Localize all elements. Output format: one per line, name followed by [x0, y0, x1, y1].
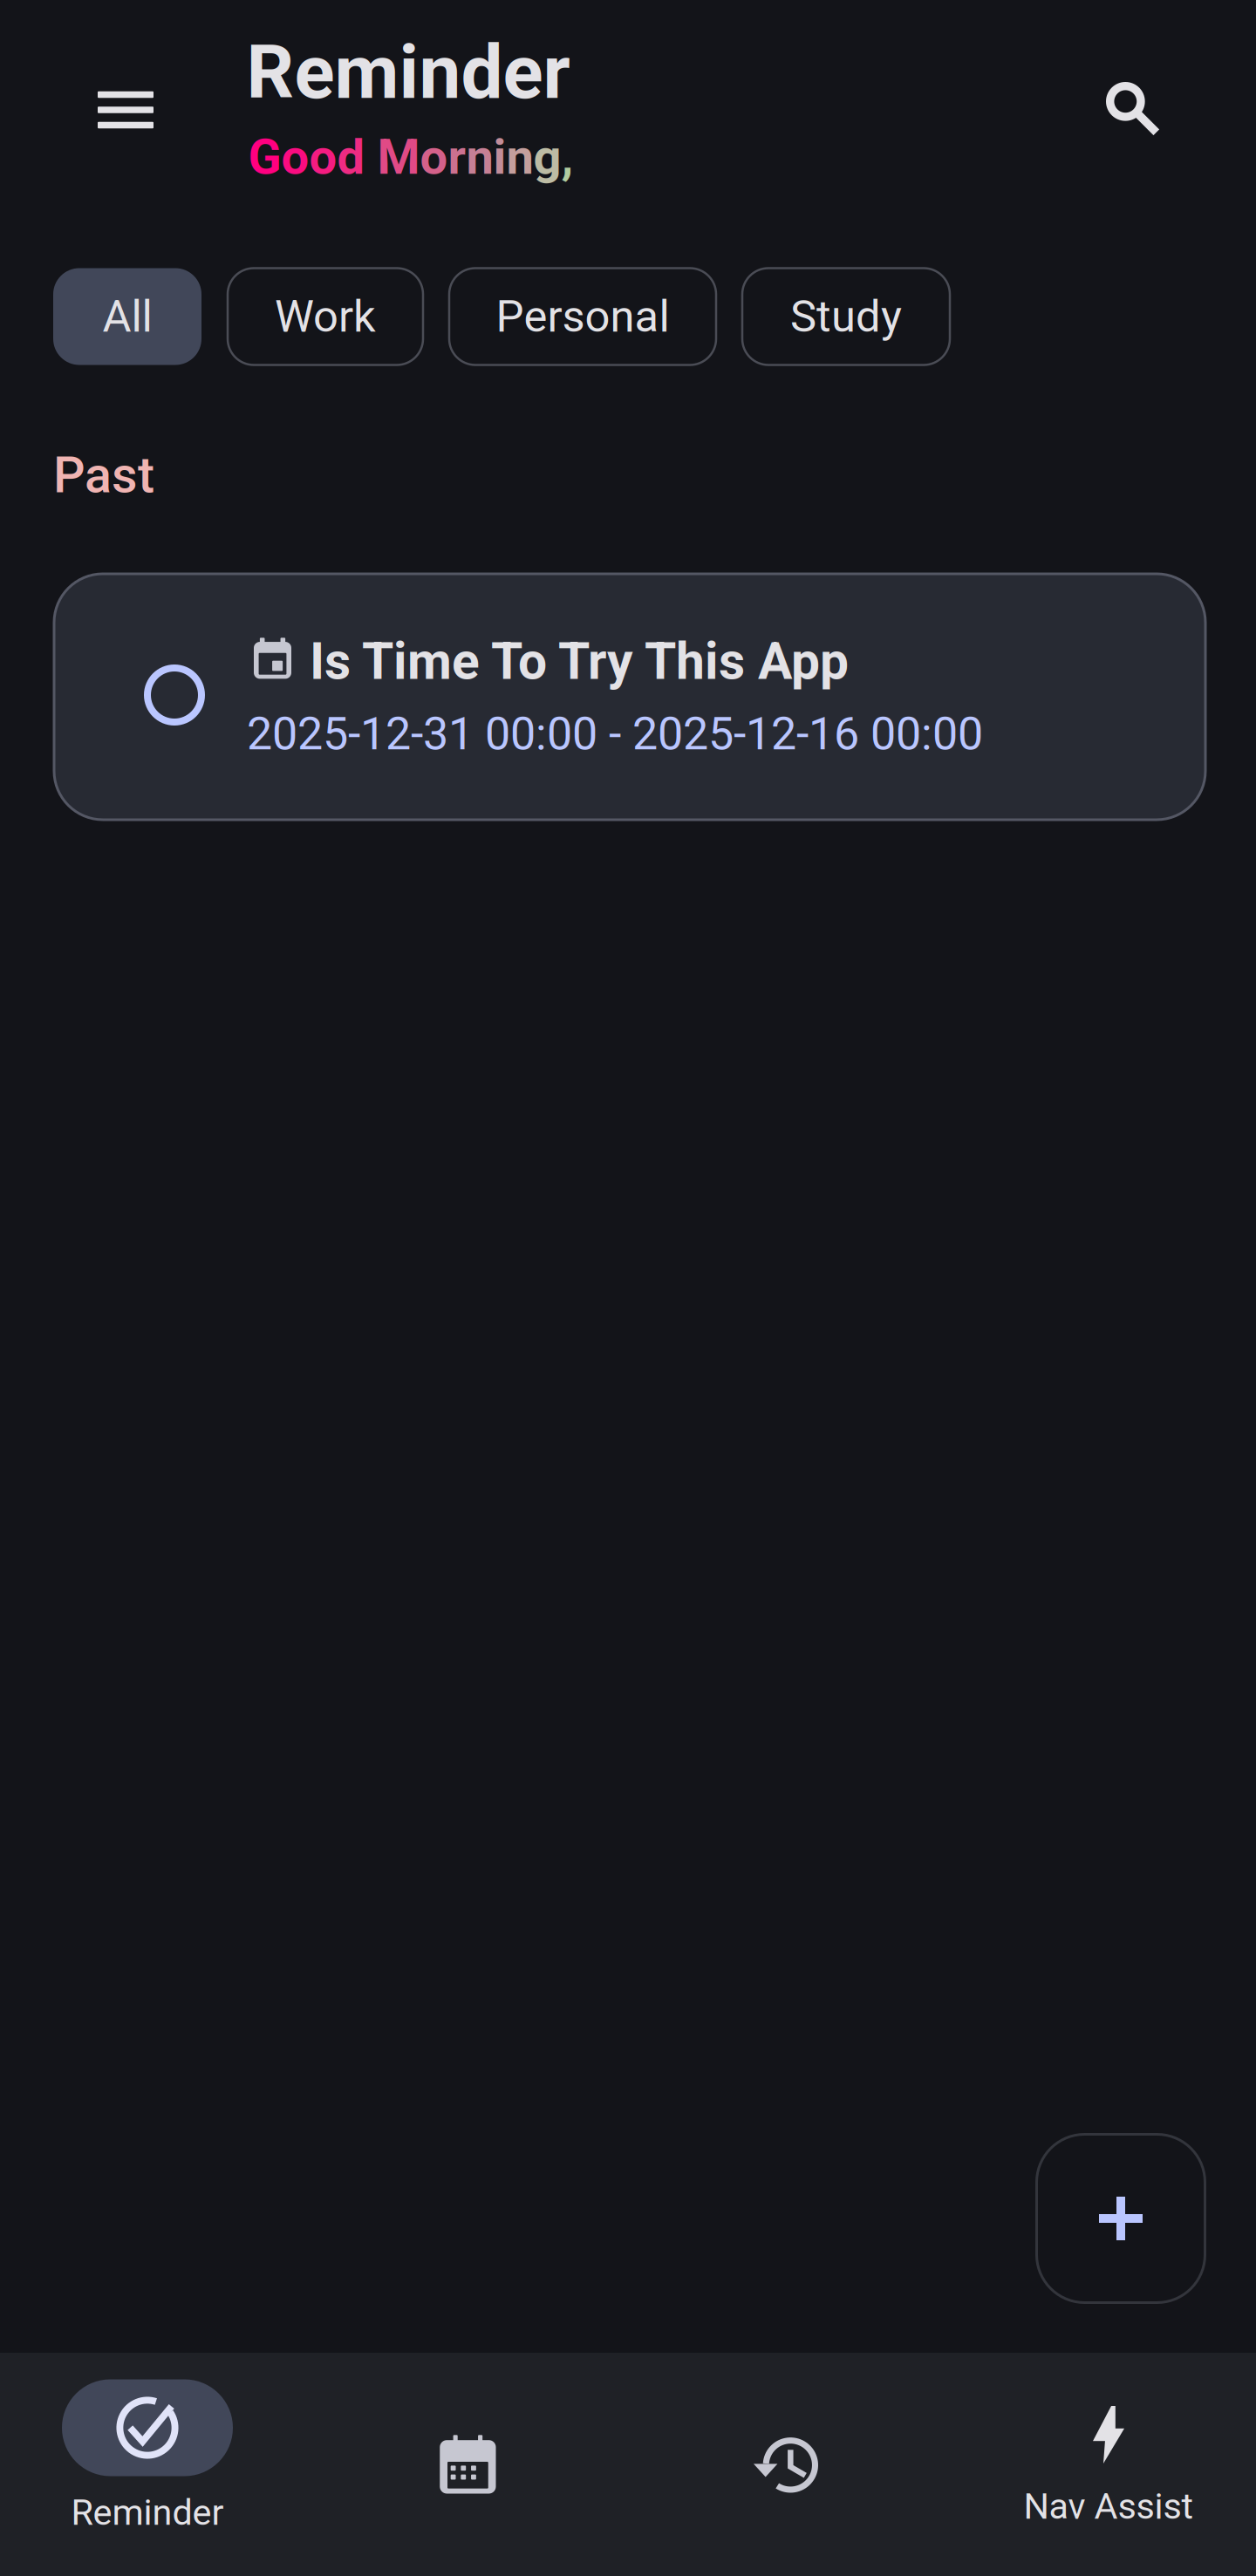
- button[interactable]: Reminder: [0, 2353, 304, 2576]
- staticText: Reminder: [246, 29, 570, 116]
- button[interactable]: Search: [1081, 57, 1185, 161]
- staticText: r: [448, 128, 466, 186]
- staticText: M: [377, 128, 420, 186]
- button[interactable]: Add reminder: [1037, 2134, 1205, 2303]
- staticText: ,: [561, 128, 573, 186]
- staticText: o: [281, 128, 309, 186]
- staticText: Personal: [496, 291, 669, 342]
- staticText: Reminder: [71, 2491, 224, 2533]
- button[interactable]: All: [53, 268, 201, 365]
- staticText: d: [337, 128, 365, 186]
- staticText: n: [506, 128, 533, 186]
- staticText: Nav Assist: [1024, 2485, 1194, 2527]
- staticText: 2025-12-31 00:00 - 2025-12-16 00:00: [247, 707, 983, 760]
- button[interactable]: Study: [742, 268, 950, 365]
- button[interactable]: Nav Assist: [952, 2353, 1256, 2576]
- button[interactable]: Work: [228, 268, 423, 365]
- staticText: n: [466, 128, 493, 186]
- button[interactable]: Is Time To Try This App: [54, 574, 1205, 820]
- staticText: Work: [275, 291, 376, 342]
- button[interactable]: [629, 2353, 943, 2576]
- staticText: Is Time To Try This App: [310, 631, 849, 691]
- button[interactable]: Menu: [73, 58, 178, 162]
- staticText: Past: [53, 446, 154, 505]
- button[interactable]: Personal: [449, 268, 716, 365]
- button[interactable]: [307, 2353, 621, 2576]
- staticText: o: [309, 128, 337, 186]
- staticText: i: [493, 128, 506, 186]
- staticText: Study: [790, 291, 902, 342]
- staticText: o: [420, 128, 448, 186]
- staticText: g: [533, 128, 561, 186]
- staticText: G: [248, 128, 281, 186]
- staticText: All: [102, 291, 152, 342]
